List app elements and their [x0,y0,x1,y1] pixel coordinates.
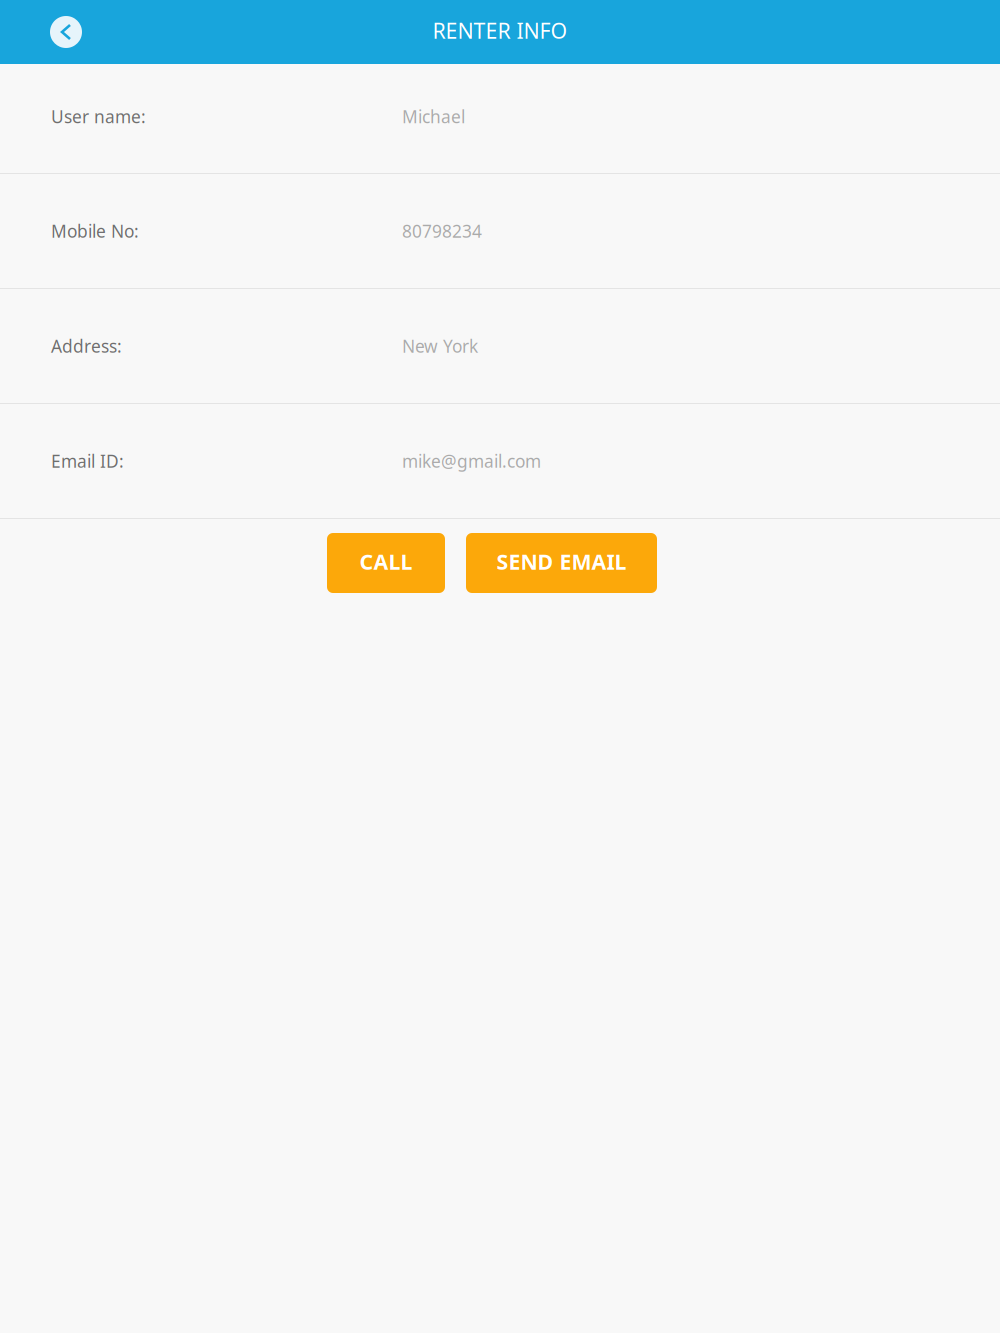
button[interactable]: Back [42,0,90,64]
staticText: RENTER INFO [432,16,567,45]
staticText: Email ID: [51,449,124,472]
staticText: Mobile No: [51,219,139,242]
staticText: Michael [402,105,465,128]
staticText: 80798234 [402,219,482,242]
staticText: Address: [51,334,122,357]
staticText: New York [402,334,478,357]
button[interactable]: CALL [327,533,445,593]
button[interactable]: SEND EMAIL [466,533,657,593]
staticText: mike@gmail.com [402,449,541,472]
staticText: User name: [51,105,146,128]
staticText: CALL [359,547,412,576]
staticText: SEND EMAIL [496,547,626,576]
